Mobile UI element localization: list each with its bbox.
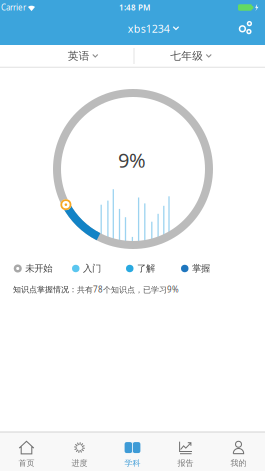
button[interactable]: 英语 bbox=[0, 45, 134, 67]
staticText: 英语 bbox=[68, 49, 90, 62]
staticText: 掌握 bbox=[192, 263, 210, 274]
staticText: Carrier bbox=[1, 2, 26, 13]
staticText: 进度 bbox=[71, 458, 87, 468]
staticText: 9% bbox=[118, 147, 146, 173]
staticText: 报告 bbox=[177, 458, 193, 468]
button[interactable]: 我的 bbox=[212, 435, 265, 471]
staticText: 我的 bbox=[230, 458, 246, 468]
staticText: xbs1234 bbox=[128, 21, 170, 36]
button[interactable]: 报告 bbox=[159, 435, 212, 471]
staticText: 首页 bbox=[18, 458, 34, 468]
button[interactable]: 首页 bbox=[0, 435, 53, 471]
staticText: 知识点掌握情况： bbox=[13, 285, 77, 294]
button[interactable]: Share bbox=[237, 19, 255, 37]
staticText: 七年级 bbox=[170, 49, 203, 62]
staticText: 学科 bbox=[124, 458, 140, 468]
button[interactable]: 学科 bbox=[106, 435, 159, 471]
staticText: 了解 bbox=[137, 263, 155, 274]
button[interactable]: 进度 bbox=[53, 435, 106, 471]
staticText: 1:48 PM bbox=[119, 2, 150, 13]
button[interactable]: 七年级 bbox=[134, 45, 265, 67]
staticText: 未开始 bbox=[25, 263, 52, 274]
button[interactable]: xbs1234 bbox=[121, 17, 185, 39]
staticText: 共有78个知识点，已学习9% bbox=[77, 284, 179, 295]
staticText: 入门 bbox=[83, 263, 101, 274]
